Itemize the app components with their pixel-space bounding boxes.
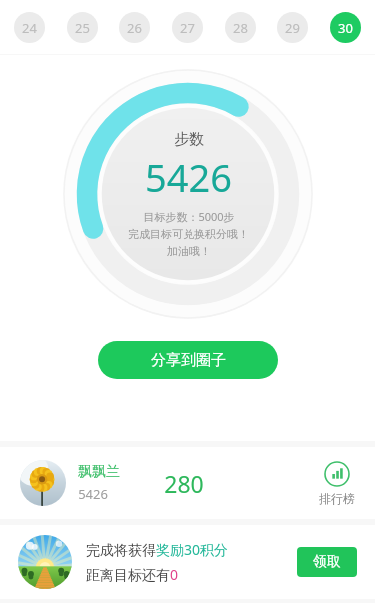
button[interactable]: 领取 bbox=[297, 547, 357, 577]
staticText: 28 bbox=[233, 19, 248, 37]
staticText: 30 bbox=[338, 19, 353, 37]
button[interactable]: 29 bbox=[277, 12, 308, 43]
staticText: 280 bbox=[164, 468, 204, 499]
staticText: 25 bbox=[75, 19, 90, 37]
button[interactable]: 25 bbox=[67, 12, 98, 43]
staticText: 5426 bbox=[145, 151, 232, 203]
staticText: 5426 bbox=[78, 485, 108, 503]
staticText: 27 bbox=[180, 19, 195, 37]
button[interactable]: 排行榜 bbox=[307, 461, 367, 506]
staticText: 排行榜 bbox=[319, 491, 355, 506]
staticText: 完成目标可兑换积分哦！ bbox=[128, 227, 249, 241]
staticText: 加油哦！ bbox=[167, 244, 211, 258]
staticText: 29 bbox=[285, 19, 300, 37]
staticText: 24 bbox=[22, 19, 37, 37]
staticText: 步数 bbox=[174, 130, 204, 149]
staticText: 26 bbox=[127, 19, 142, 37]
button[interactable]: 24 bbox=[14, 12, 45, 43]
button[interactable]: 30 bbox=[330, 12, 361, 43]
staticText: 距离目标还有0 bbox=[86, 565, 179, 584]
staticText: 领取 bbox=[313, 553, 341, 571]
button[interactable]: 27 bbox=[172, 12, 203, 43]
button[interactable]: 26 bbox=[119, 12, 150, 43]
button[interactable]: 28 bbox=[225, 12, 256, 43]
button[interactable]: 飘飘兰 bbox=[0, 447, 375, 519]
staticText: 飘飘兰 bbox=[78, 463, 120, 481]
staticText: 目标步数：5000步 bbox=[143, 209, 235, 224]
staticText: 完成将获得奖励30积分 bbox=[86, 540, 229, 559]
button[interactable]: 分享到圈子 bbox=[98, 341, 278, 379]
staticText: 分享到圈子 bbox=[151, 351, 226, 370]
